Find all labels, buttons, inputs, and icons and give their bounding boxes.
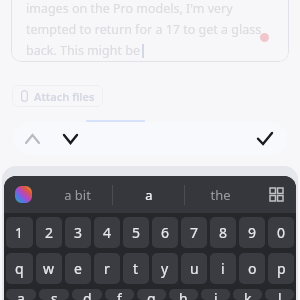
staticText: g: [147, 289, 156, 300]
staticText: the: [210, 186, 231, 204]
staticText: w: [43, 259, 55, 278]
staticText: 6: [161, 223, 170, 242]
staticText: q: [15, 259, 24, 278]
button[interactable]: j: [201, 289, 230, 300]
button[interactable]: k: [233, 289, 262, 300]
button[interactable]: f: [105, 289, 134, 300]
button[interactable]: l: [265, 289, 294, 300]
button[interactable]: 3: [65, 217, 91, 248]
button[interactable]: 8: [210, 217, 236, 248]
staticText: f: [117, 289, 122, 300]
staticText: 0: [277, 223, 286, 242]
button[interactable]: 4: [94, 217, 120, 248]
staticText: images on the Pro models, I'm very: [26, 0, 233, 17]
button[interactable]: w: [36, 253, 62, 284]
staticText: 3: [74, 223, 83, 242]
button[interactable]: q: [6, 253, 33, 284]
button[interactable]: p: [268, 253, 294, 284]
staticText: l: [278, 289, 282, 300]
button[interactable]: r: [94, 253, 120, 284]
button[interactable]: 0: [268, 217, 294, 248]
staticText: 9: [248, 223, 257, 242]
staticText: 1: [15, 223, 24, 242]
button[interactable]: a: [113, 176, 184, 213]
staticText: back. This might be: [26, 42, 140, 59]
staticText: d: [83, 289, 92, 300]
button[interactable]: g: [137, 289, 166, 300]
staticText: Attach files: [34, 89, 95, 104]
button[interactable]: Attach files: [20, 85, 95, 107]
staticText: j: [214, 289, 218, 300]
staticText: 2: [45, 223, 54, 242]
staticText: p: [277, 259, 286, 278]
staticText: h: [179, 289, 188, 300]
staticText: a: [145, 186, 153, 204]
button[interactable]: i: [210, 253, 236, 284]
button[interactable]: a: [6, 289, 36, 300]
staticText: y: [161, 259, 169, 278]
staticText: i: [221, 259, 225, 278]
button[interactable]: s: [39, 289, 69, 300]
staticText: r: [104, 259, 110, 278]
button[interactable]: 1: [6, 217, 33, 248]
button[interactable]: Keyboard options: [256, 176, 296, 213]
staticText: s: [51, 289, 58, 300]
button[interactable]: [11, 0, 289, 62]
button[interactable]: 5: [123, 217, 149, 248]
staticText: 5: [132, 223, 141, 242]
staticText: 4: [103, 223, 112, 242]
button[interactable]: Next: [51, 122, 89, 155]
button[interactable]: the: [185, 176, 256, 213]
staticText: k: [244, 289, 252, 300]
button[interactable]: y: [152, 253, 178, 284]
button[interactable]: e: [65, 253, 91, 284]
staticText: u: [190, 259, 199, 278]
staticText: tempted to return for a 17 to get a glas…: [26, 21, 262, 38]
button[interactable]: h: [169, 289, 198, 300]
staticText: a bit: [64, 186, 91, 204]
staticText: o: [248, 259, 257, 278]
staticText: t: [133, 259, 139, 278]
button[interactable]: d: [72, 289, 102, 300]
staticText: 7: [190, 223, 199, 242]
staticText: 8: [219, 223, 228, 242]
staticText: a: [17, 289, 25, 300]
button[interactable]: t: [123, 253, 149, 284]
button[interactable]: Done: [243, 122, 287, 155]
button[interactable]: 9: [239, 217, 265, 248]
button[interactable]: 2: [36, 217, 62, 248]
button[interactable]: 6: [152, 217, 178, 248]
button[interactable]: Previous: [13, 122, 51, 155]
button[interactable]: Gemini assistant: [4, 176, 42, 213]
staticText: e: [74, 259, 82, 278]
button[interactable]: 7: [181, 217, 207, 248]
button[interactable]: u: [181, 253, 207, 284]
button[interactable]: a bit: [42, 176, 112, 213]
button[interactable]: o: [239, 253, 265, 284]
